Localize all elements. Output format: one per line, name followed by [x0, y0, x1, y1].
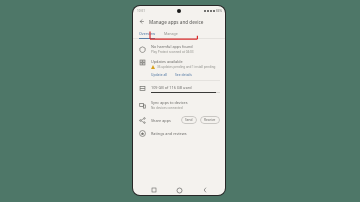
- staticText: Overview: [139, 31, 156, 36]
- button[interactable]: Back: [137, 17, 146, 26]
- button[interactable]: Update all: [151, 71, 168, 77]
- staticText: Ratings and reviews: [151, 131, 187, 136]
- staticText: 109 GB of 116 GB used: [151, 85, 192, 90]
- staticText: No harmful apps found: [151, 44, 193, 49]
- button[interactable]: 109 GB of 116 GB used: [133, 82, 225, 95]
- staticText: 36 updates pending and 1 install pending: [157, 65, 216, 69]
- staticText: Share apps: [151, 118, 171, 123]
- staticText: Manage apps and device: [149, 19, 204, 25]
- button[interactable]: Home: [174, 185, 184, 195]
- staticText: Manage: [164, 31, 178, 36]
- button[interactable]: Ratings and reviews: [133, 127, 225, 140]
- staticText: 10:51: [137, 9, 146, 13]
- staticText: Sync apps to devices: [151, 100, 188, 105]
- button[interactable]: Receive: [200, 116, 220, 124]
- staticText: Update all: [151, 72, 168, 76]
- button[interactable]: See details: [175, 71, 192, 77]
- button[interactable]: Sync apps to devices: [133, 97, 225, 113]
- staticText: Play Protect scanned at 04:03: [151, 50, 194, 54]
- staticText: No devices connected: [151, 106, 183, 110]
- button[interactable]: No harmful apps found: [133, 41, 225, 57]
- staticText: Receive: [204, 118, 216, 122]
- staticText: 84%: [216, 9, 222, 13]
- button[interactable]: Manage: [164, 28, 178, 38]
- staticText: See details: [175, 72, 192, 76]
- button[interactable]: Back: [200, 185, 210, 195]
- button[interactable]: Recents: [149, 185, 159, 195]
- button[interactable]: Overview: [139, 28, 156, 38]
- staticText: Updates available: [151, 59, 183, 64]
- staticText: Send: [185, 118, 193, 122]
- button[interactable]: Send: [181, 116, 197, 124]
